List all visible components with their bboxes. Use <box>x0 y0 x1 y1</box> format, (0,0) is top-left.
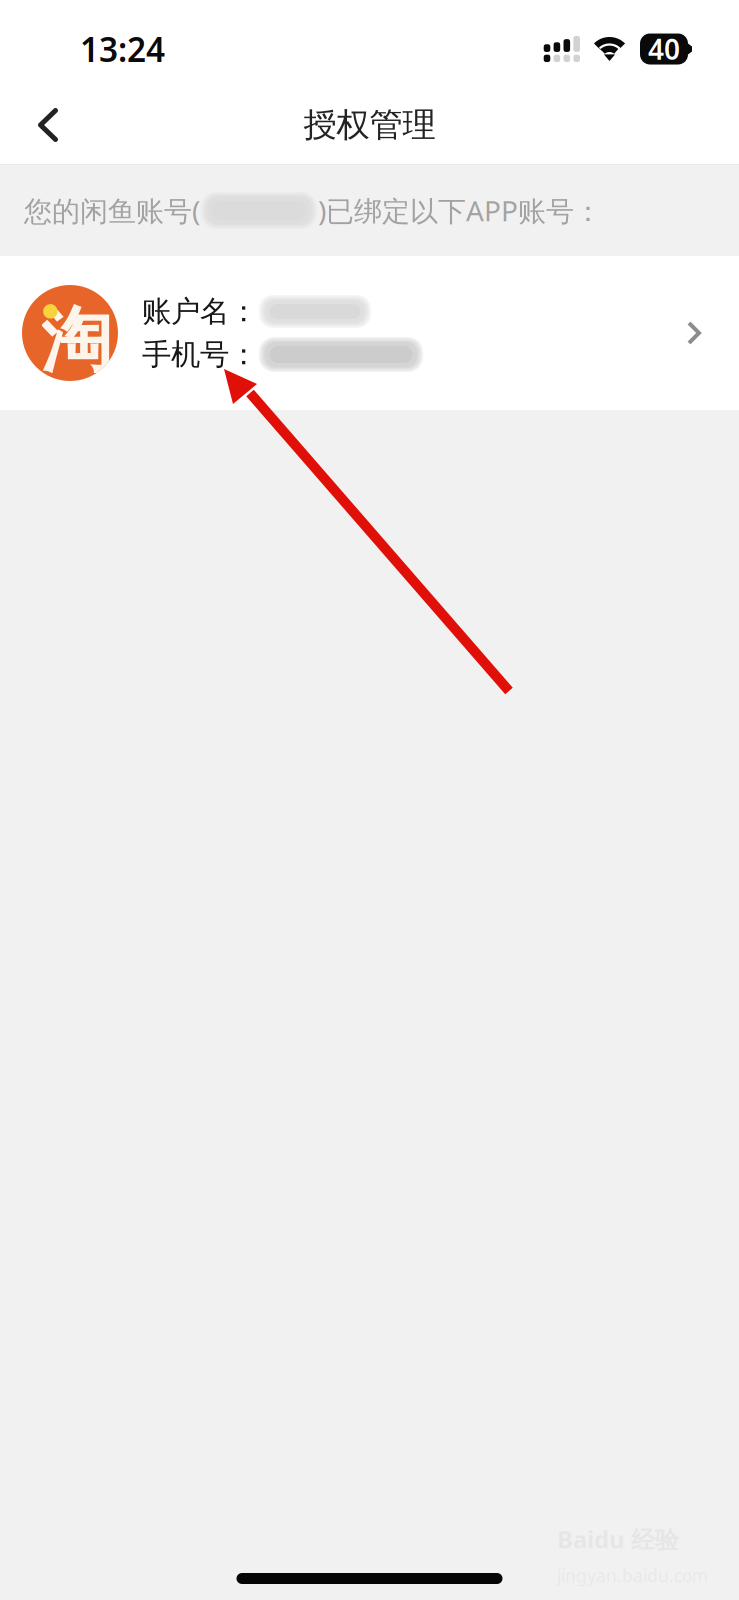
staticText: )已绑定以下APP账号： <box>318 192 602 229</box>
staticText: 手机号： <box>142 336 258 372</box>
button[interactable]: 淘 <box>0 256 739 410</box>
button[interactable]: 返回 <box>0 86 96 164</box>
staticText: 账户名： <box>142 293 258 329</box>
staticText: 您的闲鱼账号( <box>24 192 200 229</box>
staticText: Baidu 经验 <box>557 1523 679 1555</box>
staticText: 13:24 <box>80 27 165 71</box>
staticText: 淘 <box>41 297 112 384</box>
staticText: 40 <box>648 30 680 68</box>
staticText: 授权管理 <box>303 104 435 145</box>
